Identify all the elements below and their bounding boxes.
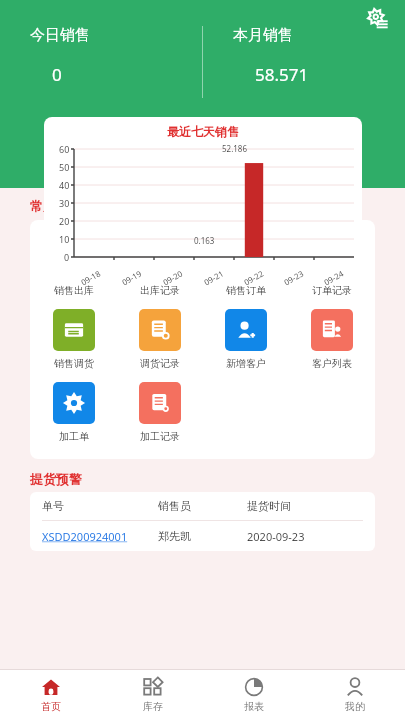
button[interactable]: 加工单 — [30, 376, 117, 449]
button[interactable]: 销售调货 — [30, 303, 117, 376]
staticText: 调货记录 — [140, 357, 180, 370]
button[interactable]: 新增客户 — [203, 303, 289, 376]
staticText: 09-24 — [322, 267, 345, 285]
staticText: 客户列表 — [312, 357, 352, 370]
staticText: 销售订单 — [226, 284, 266, 297]
staticText: 最近七天销售 — [167, 124, 239, 139]
button[interactable]: 首页 — [0, 670, 102, 720]
staticText: 销售出库 — [54, 284, 94, 297]
button[interactable]: 我的 — [304, 670, 405, 720]
button[interactable]: 订单记录 — [289, 230, 375, 303]
staticText: 09-23 — [282, 267, 305, 285]
staticText: 提货预警 — [30, 471, 82, 487]
staticText: 0 — [52, 63, 62, 86]
staticText: 销售员 — [158, 499, 247, 513]
button[interactable]: 调货记录 — [117, 303, 203, 376]
button[interactable]: Settings — [363, 4, 393, 34]
staticText: 加工单 — [59, 430, 89, 443]
button[interactable]: 销售出库 — [30, 230, 117, 303]
staticText: 郑先凯 — [158, 529, 247, 543]
staticText: 我的 — [345, 700, 365, 713]
staticText: XSDD200924001 — [42, 529, 158, 544]
button[interactable]: 出库记录 — [117, 230, 203, 303]
staticText: 09-19 — [120, 267, 143, 285]
button[interactable]: 库存 — [102, 670, 203, 720]
button[interactable]: 加工记录 — [117, 376, 203, 449]
staticText: 今日销售 — [30, 26, 90, 45]
staticText: 09-21 — [202, 267, 225, 285]
staticText: 30 — [59, 197, 70, 209]
staticText: 60 — [59, 143, 70, 155]
staticText: 40 — [59, 179, 70, 191]
staticText: 本月销售 — [233, 26, 293, 45]
staticText: 10 — [59, 233, 70, 245]
staticText: 58.571 — [255, 63, 309, 86]
staticText: 0 — [64, 251, 70, 263]
staticText: 09-22 — [242, 267, 265, 285]
staticText: 订单记录 — [312, 284, 352, 297]
staticText: 销售调货 — [54, 357, 94, 370]
staticText: 新增客户 — [226, 357, 266, 370]
button[interactable]: 销售订单 — [203, 230, 289, 303]
staticText: 提货时间 — [247, 499, 363, 513]
button[interactable]: XSDD200924001 — [42, 521, 363, 551]
staticText: 09-18 — [79, 267, 102, 285]
staticText: 库存 — [143, 700, 163, 713]
staticText: 52.186 — [222, 143, 248, 154]
staticText: 常用功能 — [30, 198, 82, 214]
staticText: 出库记录 — [140, 284, 180, 297]
staticText: 报表 — [244, 700, 264, 713]
staticText: 20 — [59, 215, 70, 227]
staticText: 首页 — [41, 700, 61, 713]
button[interactable]: 客户列表 — [289, 303, 375, 376]
staticText: 2020-09-23 — [247, 529, 363, 544]
staticText: 09-20 — [161, 267, 184, 285]
staticText: 0.163 — [194, 235, 215, 246]
staticText: 加工记录 — [140, 430, 180, 443]
staticText: 单号 — [42, 499, 158, 513]
button[interactable]: 报表 — [203, 670, 304, 720]
staticText: 50 — [59, 161, 70, 173]
